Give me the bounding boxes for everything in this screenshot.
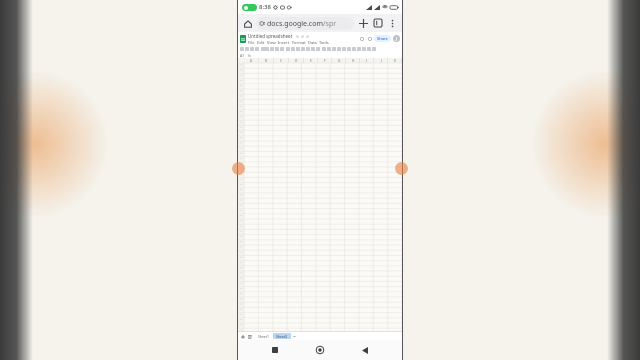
staticText: B [265, 59, 268, 63]
button[interactable]: Tools [319, 40, 331, 45]
button[interactable]: Toolbar action [366, 35, 373, 42]
staticText: 8:38 [259, 3, 271, 11]
button[interactable]: Recent apps [267, 342, 283, 358]
button[interactable]: Google Sheets [240, 35, 246, 43]
button[interactable]: View [267, 40, 278, 45]
staticText: Sheet1 [258, 334, 269, 339]
button[interactable]: Share [374, 35, 391, 42]
staticText: Untitled spreadsheet [248, 33, 293, 39]
button[interactable]: Format [292, 40, 308, 45]
staticText: Tools [319, 40, 329, 45]
staticText: C [280, 59, 283, 63]
button[interactable]: Back [357, 342, 373, 358]
button[interactable]: Add sheet [240, 334, 245, 339]
staticText: D [295, 59, 298, 63]
staticText: File [248, 40, 255, 45]
button[interactable]: Toolbar action [358, 35, 365, 42]
button[interactable]: More options [386, 17, 399, 30]
staticText: J [396, 36, 398, 41]
staticText: Insert [278, 40, 290, 45]
staticText: Data [308, 40, 317, 45]
button[interactable]: All sheets [247, 334, 252, 339]
staticText: I [366, 59, 368, 63]
staticText: Edit [257, 40, 265, 45]
staticText: H [352, 59, 355, 63]
button[interactable]: Insert [278, 40, 292, 45]
button[interactable]: Data [308, 40, 319, 45]
staticText: docs.google.com [267, 19, 323, 29]
staticText: A [250, 59, 253, 63]
staticText: G [338, 59, 341, 63]
staticText: Share [377, 36, 388, 41]
button[interactable]: File [248, 40, 257, 45]
staticText: Format [292, 40, 306, 45]
button[interactable]: New tab [356, 16, 370, 30]
button[interactable]: docs.google.com [256, 17, 354, 30]
button[interactable]: Account [393, 35, 400, 42]
staticText: /spr [323, 19, 337, 29]
button[interactable]: Home [241, 17, 254, 30]
button[interactable]: Switch tabs [371, 16, 385, 30]
staticText: View [267, 40, 276, 45]
staticText: A1 [240, 53, 245, 58]
button[interactable]: Home [312, 342, 328, 358]
staticText: J [381, 59, 382, 63]
button[interactable]: Sheet1 [255, 333, 272, 339]
button[interactable]: Edit [257, 40, 267, 45]
staticText: fx [248, 53, 252, 58]
staticText: E [310, 59, 312, 63]
staticText: F [324, 59, 326, 63]
button[interactable]: Sheet2 [273, 333, 291, 339]
staticText: Sheet2 [276, 334, 288, 339]
staticText: K [394, 59, 396, 63]
